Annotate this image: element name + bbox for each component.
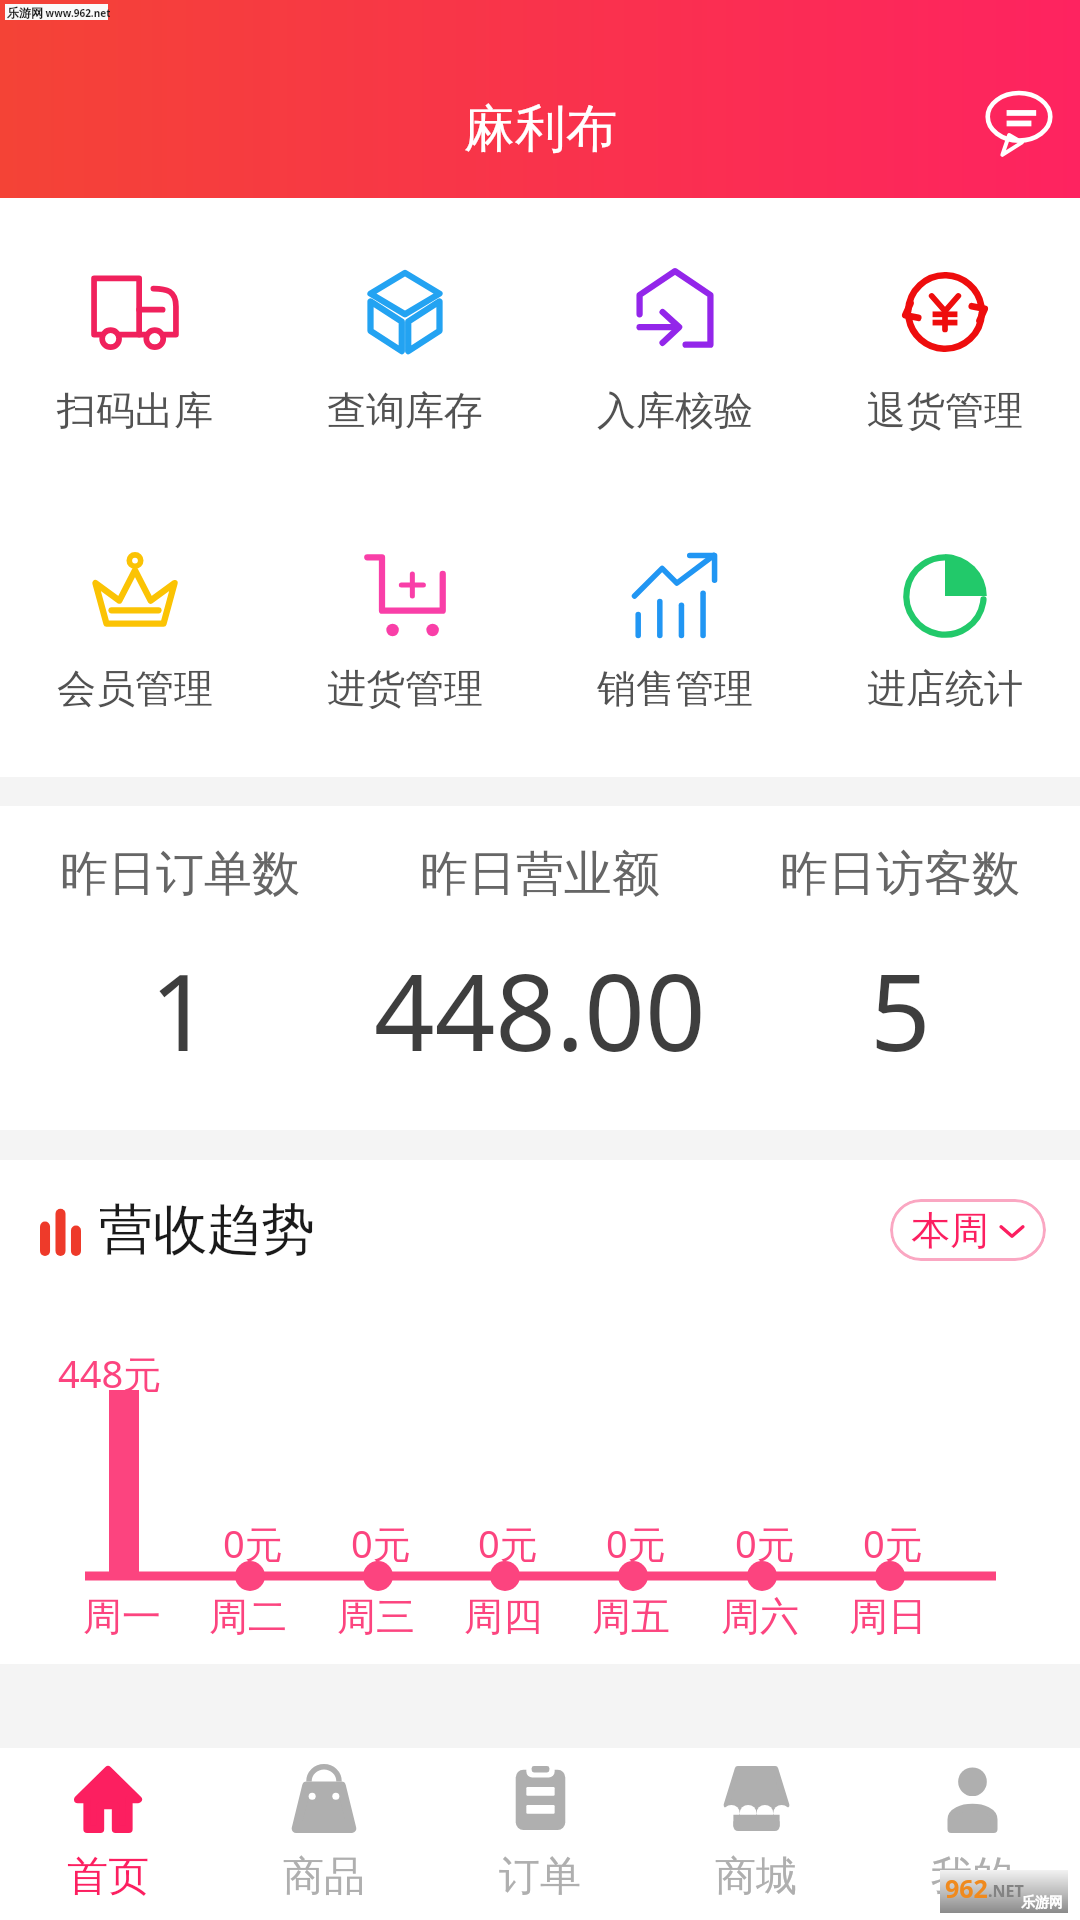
staticText: 进店统计 [867,664,1023,713]
staticText: 周一 [83,1592,161,1641]
staticText: 退货管理 [867,386,1023,435]
button[interactable]: 昨日订单数 [0,844,360,1082]
staticText: 0元 [606,1517,666,1569]
staticText: 昨日营业额 [420,844,660,904]
staticText: 0元 [478,1517,538,1569]
button[interactable]: 进货管理 [270,474,540,777]
staticText: 0元 [735,1517,795,1569]
staticText: .NET [988,1880,1024,1902]
staticText: 周六 [721,1592,799,1641]
button[interactable]: 退货管理 [810,198,1080,474]
staticText: 我的 [931,1851,1013,1903]
staticText: 周二 [209,1592,287,1641]
button[interactable]: 扫码出库 [0,198,270,474]
staticText: 麻利布 [464,97,617,161]
button[interactable]: 进店统计 [810,474,1080,777]
staticText: 0元 [351,1517,411,1569]
staticText: 会员管理 [57,664,213,713]
button[interactable]: 订单 [432,1748,648,1920]
staticText: 订单 [499,1851,581,1903]
staticText: 昨日访客数 [780,844,1020,904]
staticText: 周四 [464,1592,542,1641]
button[interactable]: 首页 [0,1748,216,1920]
button[interactable]: 我的 [864,1748,1080,1920]
staticText: 5 [870,938,931,1082]
staticText: 本周 [911,1206,989,1255]
button[interactable]: 会员管理 [0,474,270,777]
staticText: 营收趋势 [99,1196,315,1264]
staticText: 周五 [592,1592,670,1641]
staticText: 周三 [337,1592,415,1641]
staticText: 0元 [223,1517,283,1569]
staticText: 扫码出库 [57,386,213,435]
button[interactable]: 昨日访客数 [720,844,1080,1082]
staticText: 乐游网 [1021,1894,1063,1912]
staticText: 昨日订单数 [60,844,300,904]
button[interactable]: 商城 [648,1748,864,1920]
staticText: 查询库存 [327,386,483,435]
staticText: 1 [150,938,211,1082]
staticText: 448元 [58,1347,162,1399]
staticText: 入库核验 [597,386,753,435]
staticText: 周日 [849,1592,927,1641]
staticText: 商品 [283,1851,365,1903]
button[interactable]: 入库核验 [540,198,810,474]
staticText: 进货管理 [327,664,483,713]
staticText: 962 [945,1871,988,1905]
button[interactable]: 查询库存 [270,198,540,474]
button[interactable]: 本周 [890,1199,1046,1261]
button[interactable]: 商品 [216,1748,432,1920]
staticText: 0元 [863,1517,923,1569]
staticText: 商城 [715,1851,797,1903]
staticText: 乐游网 [7,5,43,20]
staticText: www.962.net [43,6,110,20]
button[interactable]: 销售管理 [540,474,810,777]
staticText: 销售管理 [597,664,753,713]
staticText: 448.00 [374,938,706,1082]
button[interactable]: 昨日营业额 [360,844,720,1082]
button[interactable]: Messages [967,69,1071,173]
staticText: 首页 [67,1851,149,1903]
